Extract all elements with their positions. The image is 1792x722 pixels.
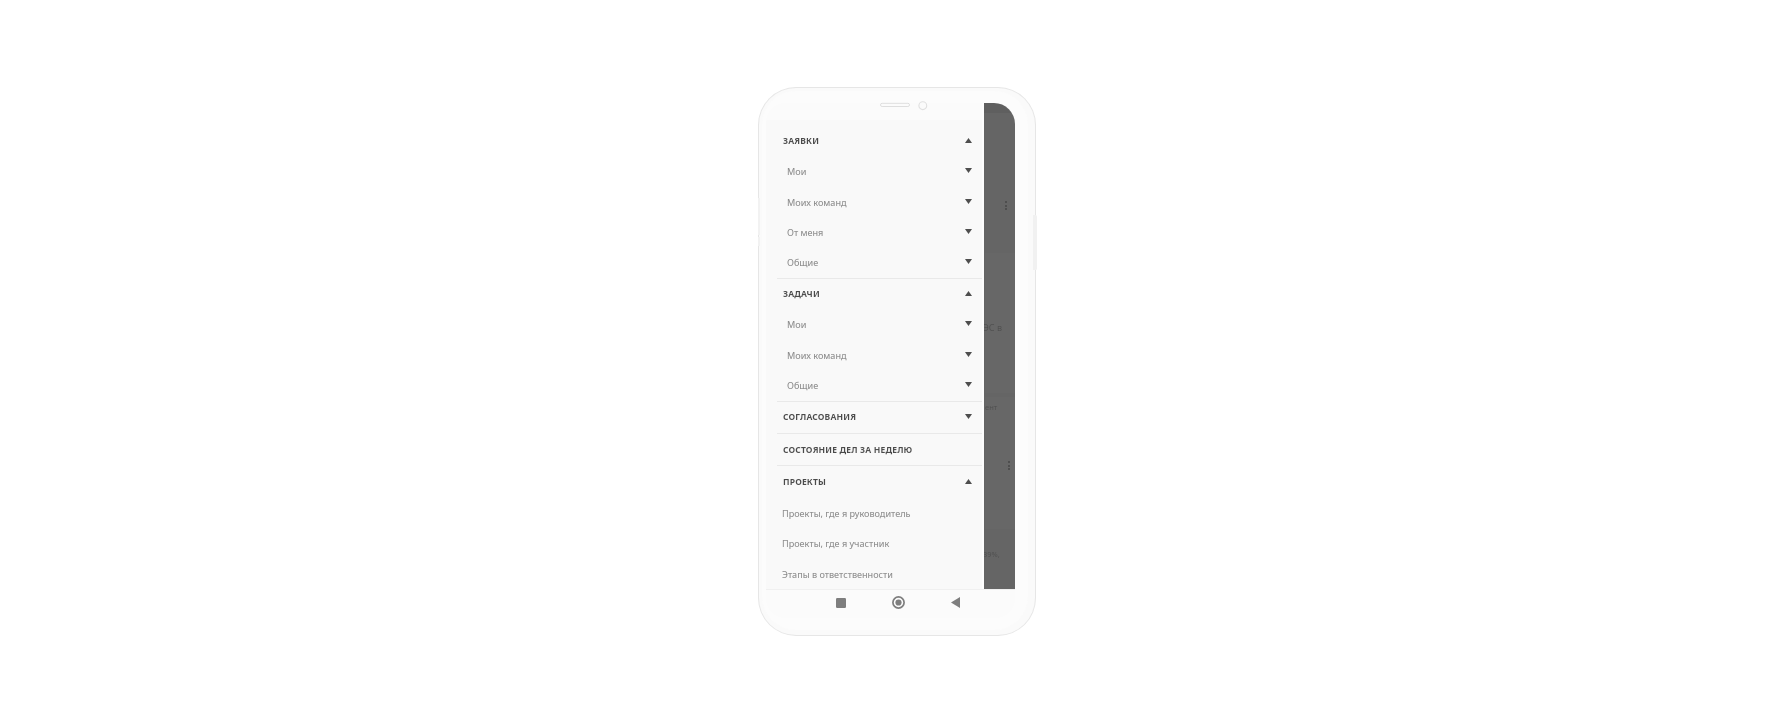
button[interactable]: Проекты, где я руководитель bbox=[766, 497, 984, 528]
staticText: ПРОЕКТЫ bbox=[783, 476, 827, 488]
staticText: СОСТОЯНИЕ ДЕЛ ЗА НЕДЕЛЮ bbox=[783, 444, 913, 456]
button[interactable]: Проекты, где я участник bbox=[766, 527, 984, 558]
button[interactable]: От меня bbox=[766, 216, 984, 247]
staticText: ЗАДАЧИ bbox=[783, 288, 820, 300]
staticText: ент bbox=[985, 402, 998, 412]
staticText: Общие bbox=[787, 256, 819, 268]
button[interactable]: Этапы в ответственности bbox=[766, 558, 984, 589]
button[interactable]: Моих команд bbox=[766, 339, 984, 370]
button[interactable]: Мои bbox=[766, 155, 984, 186]
staticText: Мои bbox=[787, 165, 807, 177]
button[interactable]: ЗАЯВКИ bbox=[766, 125, 984, 156]
button[interactable]: Recent apps bbox=[827, 589, 855, 618]
staticText: Мои bbox=[787, 318, 807, 330]
button[interactable]: Моих команд bbox=[766, 186, 984, 217]
staticText: Моих команд bbox=[787, 196, 847, 208]
staticText: ЭС в bbox=[983, 321, 1002, 333]
staticText: От меня bbox=[787, 226, 824, 238]
button[interactable]: ЗАДАЧИ bbox=[766, 278, 984, 309]
button[interactable]: Общие bbox=[766, 246, 984, 277]
button[interactable]: Мои bbox=[766, 308, 984, 339]
staticText: Проекты, где я руководитель bbox=[782, 507, 911, 519]
staticText: ЗАЯВКИ bbox=[783, 135, 820, 147]
button[interactable]: Back bbox=[941, 589, 969, 618]
staticText: Этапы в ответственности bbox=[782, 568, 893, 580]
button[interactable]: СОСТОЯНИЕ ДЕЛ ЗА НЕДЕЛЮ bbox=[766, 434, 984, 465]
staticText: Общие bbox=[787, 379, 819, 391]
staticText: Моих команд bbox=[787, 349, 847, 361]
button[interactable]: ПРОЕКТЫ bbox=[766, 466, 984, 497]
staticText: СОГЛАСОВАНИЯ bbox=[783, 411, 857, 423]
staticText: 39%, bbox=[983, 549, 1000, 559]
button[interactable]: Общие bbox=[766, 369, 984, 400]
button[interactable]: Home bbox=[884, 589, 912, 618]
button[interactable]: СОГЛАСОВАНИЯ bbox=[766, 401, 984, 432]
staticText: Проекты, где я участник bbox=[782, 537, 890, 549]
